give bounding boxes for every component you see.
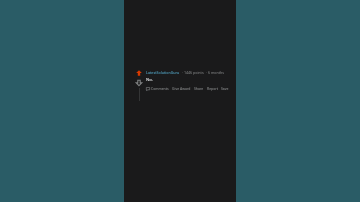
button[interactable]: Give Award xyxy=(172,86,191,91)
staticText: Report xyxy=(207,86,218,91)
button[interactable]: Save xyxy=(221,86,229,91)
staticText: Give Award xyxy=(172,86,191,91)
staticText: No. xyxy=(146,77,153,83)
button[interactable]: Share xyxy=(194,86,204,91)
button[interactable]: Upvote xyxy=(136,70,142,76)
staticText: Share xyxy=(194,86,204,91)
button[interactable]: Downvote xyxy=(136,80,142,86)
button[interactable]: Report xyxy=(207,86,218,91)
staticText: Save xyxy=(221,86,229,91)
staticText: LatestSolutionGuru xyxy=(146,70,180,75)
staticText: · 6 months ago xyxy=(206,70,230,75)
button[interactable]: Comments xyxy=(146,86,169,91)
button[interactable]: Upvote xyxy=(124,70,236,101)
staticText: · 1446 points xyxy=(182,70,204,75)
staticText: Comments xyxy=(151,86,169,91)
